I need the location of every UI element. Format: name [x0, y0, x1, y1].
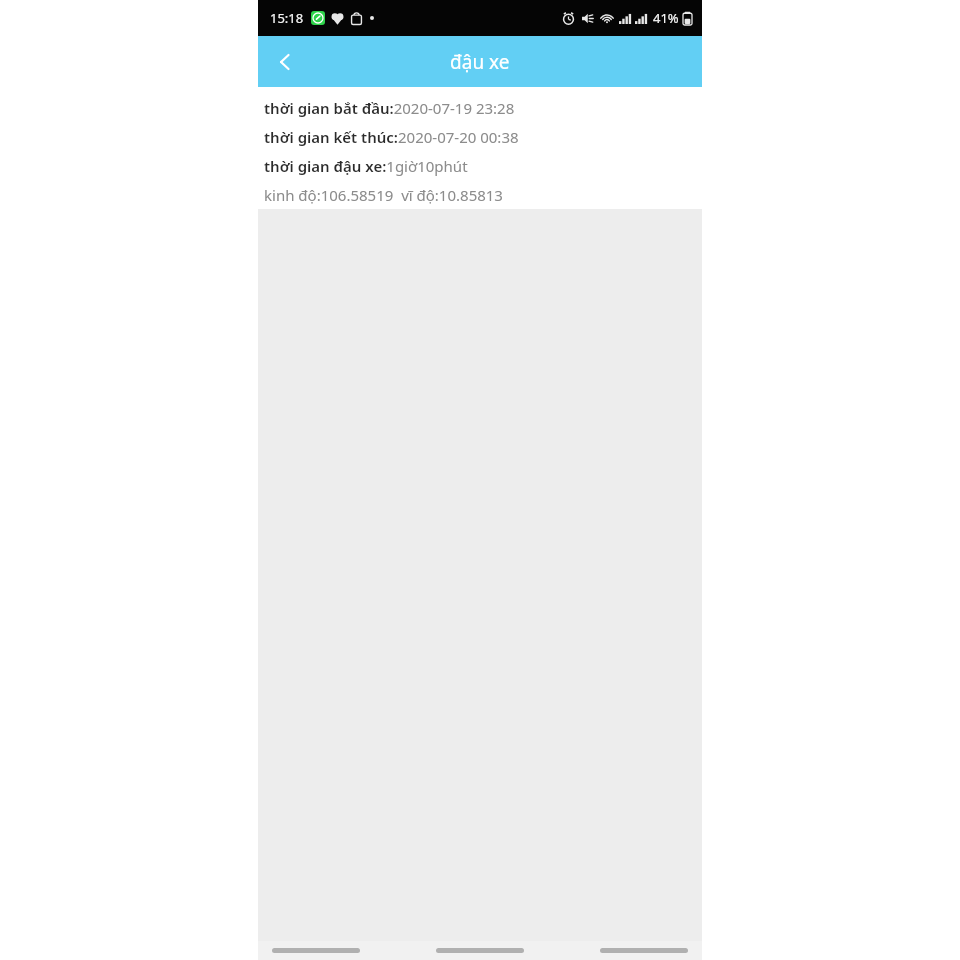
button[interactable]: Navigation key [436, 941, 524, 960]
button[interactable]: Navigation key [600, 941, 688, 960]
button[interactable]: Navigation key [272, 941, 360, 960]
staticText: 15:18 [270, 9, 304, 27]
staticText: thời gian kết thúc:2020-07-20 00:38 [264, 127, 519, 147]
button[interactable]: Back [258, 36, 312, 87]
staticText: thời gian đậu xe:1giờ10phút [264, 156, 468, 176]
staticText: thời gian bắt đầu:2020-07-19 23:28 [264, 98, 515, 118]
staticText: kinh độ:106.58519 vĩ độ:10.85813 [264, 185, 503, 205]
staticText: 41% [653, 9, 679, 27]
staticText: đậu xe [450, 49, 510, 75]
